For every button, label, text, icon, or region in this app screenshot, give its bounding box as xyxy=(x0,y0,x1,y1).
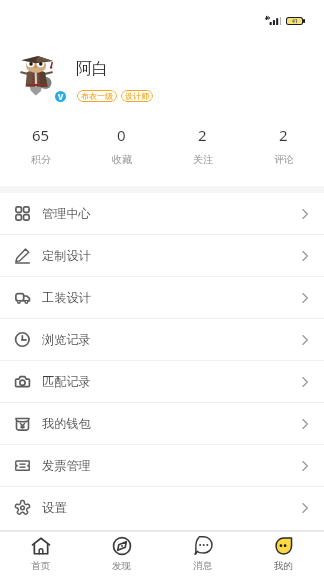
staticText: 消息 xyxy=(193,560,212,572)
staticText: 发现 xyxy=(112,560,131,572)
staticText: 2 xyxy=(198,125,207,145)
button[interactable]: 我的 xyxy=(243,532,324,576)
staticText: 首页 xyxy=(31,560,50,572)
button[interactable]: 设置 xyxy=(0,487,324,528)
staticText: 积分 xyxy=(31,153,51,166)
button[interactable]: 匹配记录 xyxy=(0,361,324,402)
staticText: 关注 xyxy=(193,153,213,166)
staticText: 管理中心 xyxy=(42,206,91,221)
staticText: 匹配记录 xyxy=(42,374,91,389)
staticText: 我的钱包 xyxy=(42,416,91,431)
staticText: 设置 xyxy=(42,500,67,515)
staticText: 定制设计 xyxy=(42,248,91,263)
staticText: 我的 xyxy=(274,560,293,572)
staticText: 65 xyxy=(32,125,50,145)
button[interactable]: 工装设计 xyxy=(0,277,324,318)
staticText: 浏览记录 xyxy=(42,332,91,347)
button[interactable]: 用户头像 xyxy=(15,52,59,96)
button[interactable]: 65 xyxy=(0,110,81,186)
button[interactable]: 我的钱包 xyxy=(0,403,324,444)
staticText: 0 xyxy=(117,125,126,145)
button[interactable]: 浏览记录 xyxy=(0,319,324,360)
staticText: 收藏 xyxy=(112,153,132,166)
staticText: 阿白 xyxy=(76,59,108,79)
button[interactable]: 首页 xyxy=(0,532,81,576)
button[interactable]: 管理中心 xyxy=(0,193,324,234)
button[interactable]: 发现 xyxy=(81,532,162,576)
staticText: V xyxy=(58,91,64,102)
button[interactable]: 0 xyxy=(81,110,162,186)
button[interactable]: 消息 xyxy=(162,532,243,576)
button[interactable]: 2 xyxy=(243,110,324,186)
staticText: 41 xyxy=(292,18,298,24)
button[interactable]: 定制设计 xyxy=(0,235,324,276)
button[interactable]: 发票管理 xyxy=(0,445,324,486)
button[interactable]: 2 xyxy=(162,110,243,186)
staticText: 工装设计 xyxy=(42,290,91,305)
staticText: 发票管理 xyxy=(42,458,91,473)
button[interactable]: 用户头像 xyxy=(0,26,324,110)
staticText: 评论 xyxy=(274,153,294,166)
staticText: 2 xyxy=(279,125,288,145)
staticText: 布衣一级 xyxy=(81,91,113,101)
staticText: 设计师 xyxy=(125,91,149,101)
